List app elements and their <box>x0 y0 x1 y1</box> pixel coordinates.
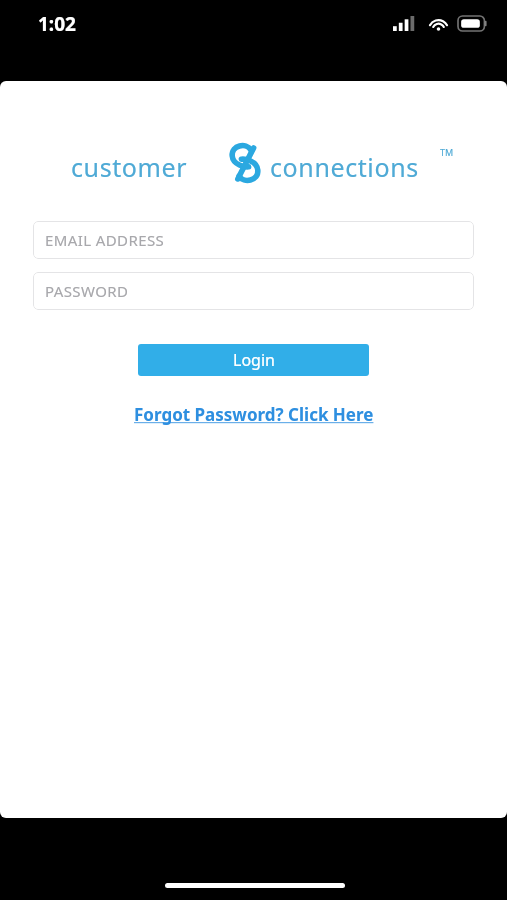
button[interactable]: EMAIL ADDRESS <box>33 221 474 259</box>
staticText: Forgot Password? Click Here <box>134 403 374 426</box>
other: Logo mark <box>227 142 263 184</box>
button[interactable]: Forgot Password? Click Here <box>0 401 507 427</box>
staticText: EMAIL ADDRESS <box>45 230 165 250</box>
staticText: PASSWORD <box>45 281 129 301</box>
staticText: connections <box>270 150 419 184</box>
staticText: TM <box>440 146 454 158</box>
button[interactable]: Login <box>138 344 369 376</box>
staticText: Login <box>233 349 275 371</box>
staticText: 1:02 <box>38 11 76 37</box>
staticText: customer <box>71 150 188 184</box>
button[interactable]: PASSWORD <box>33 272 474 310</box>
